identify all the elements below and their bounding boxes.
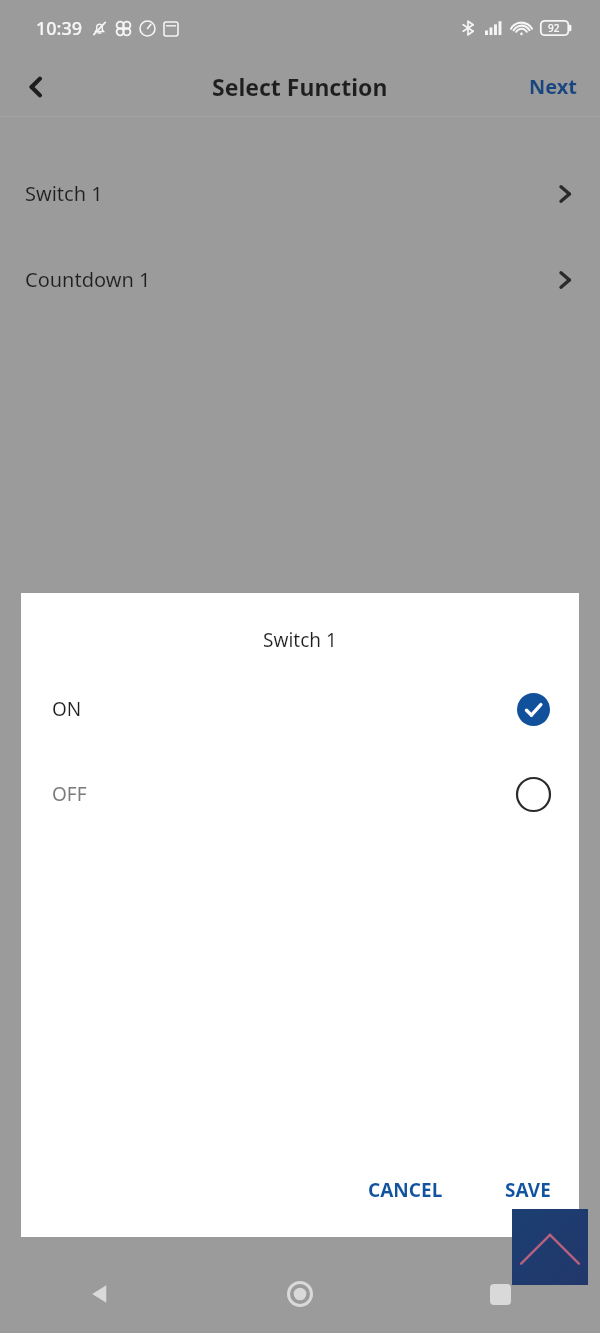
button[interactable]: OFF: [21, 764, 579, 824]
button[interactable]: CANCEL: [352, 1165, 459, 1215]
button[interactable]: Home: [274, 1268, 326, 1320]
button[interactable]: Countdown 1: [0, 237, 600, 322]
button[interactable]: ON: [21, 679, 579, 739]
staticText: 92: [548, 21, 560, 35]
staticText: Next: [529, 73, 578, 100]
staticText: Select Function: [212, 71, 388, 102]
staticText: CANCEL: [368, 1177, 443, 1203]
staticText: Countdown 1: [25, 266, 151, 293]
button[interactable]: Recents: [474, 1268, 526, 1320]
staticText: Switch 1: [25, 180, 103, 207]
button[interactable]: Switch 1: [0, 151, 600, 236]
button[interactable]: Overlay widget: [512, 1209, 588, 1285]
staticText: Switch 1: [263, 627, 337, 653]
button[interactable]: Next: [507, 61, 600, 112]
button[interactable]: SAVE: [489, 1165, 567, 1215]
staticText: 10:39: [36, 16, 83, 41]
button[interactable]: Back: [10, 61, 62, 113]
staticText: OFF: [52, 781, 87, 807]
button[interactable]: Back: [74, 1268, 126, 1320]
staticText: SAVE: [505, 1177, 551, 1203]
staticText: ON: [52, 696, 82, 722]
